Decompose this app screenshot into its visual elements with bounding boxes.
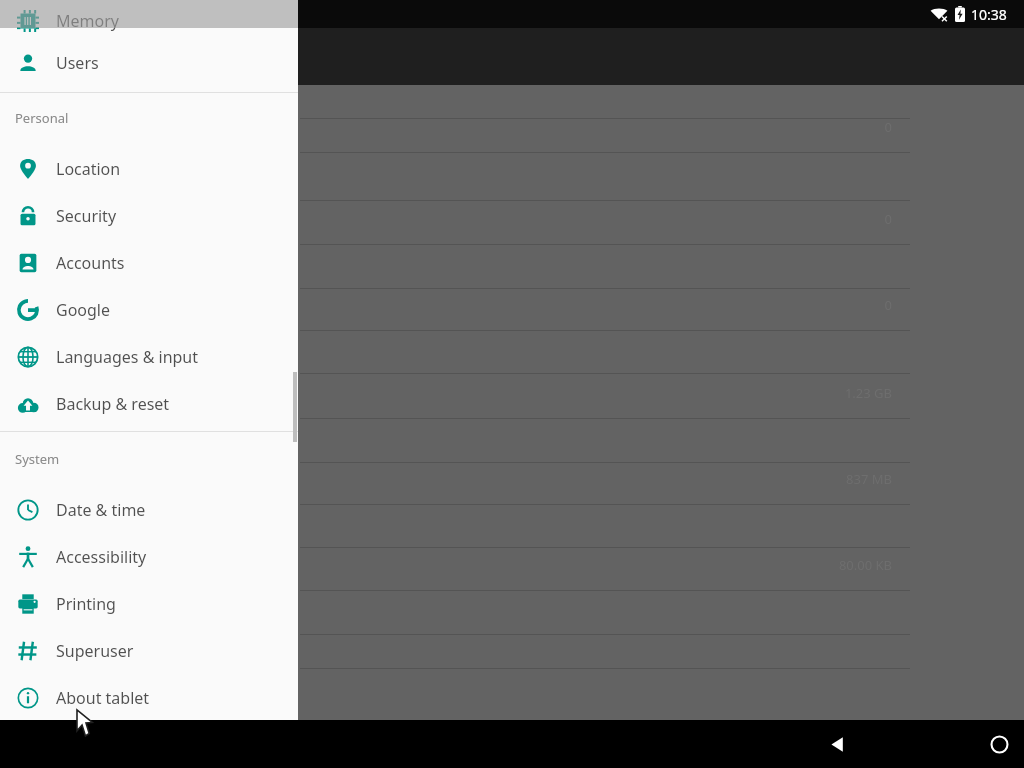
staticText: Accessibility	[56, 546, 147, 568]
button[interactable]: About tablet	[0, 681, 298, 714]
staticText: Accounts	[56, 252, 125, 274]
button[interactable]: Recent apps	[648, 720, 1024, 768]
staticText: Users	[56, 52, 99, 74]
staticText: System	[15, 450, 60, 468]
button[interactable]: Home	[487, 720, 1024, 768]
button[interactable]: Accounts	[0, 246, 298, 279]
button[interactable]: Languages & input	[0, 340, 298, 373]
staticText: About tablet	[56, 687, 150, 709]
button[interactable]: Users	[0, 46, 298, 79]
staticText: Printing	[56, 593, 116, 615]
button[interactable]: Back	[325, 720, 1024, 768]
staticText: Superuser	[56, 640, 134, 662]
button[interactable]: Google	[0, 293, 298, 326]
staticText: Security	[56, 205, 117, 227]
staticText: Languages & input	[56, 346, 199, 368]
button[interactable]: Printing	[0, 587, 298, 620]
staticText: Backup & reset	[56, 393, 170, 415]
staticText: Location	[56, 158, 121, 180]
staticText: Memory	[56, 10, 119, 32]
staticText: Google	[56, 299, 111, 321]
button[interactable]: Accessibility	[0, 540, 298, 573]
staticText: 10:38	[971, 5, 1007, 24]
button[interactable]: Superuser	[0, 634, 298, 667]
button[interactable]: Memory	[0, 4, 298, 37]
button[interactable]: Security	[0, 199, 298, 232]
staticText: 0	[820, 118, 892, 136]
button[interactable]: Location	[0, 152, 298, 185]
staticText: Personal	[15, 109, 69, 127]
staticText: Date & time	[56, 499, 146, 521]
button[interactable]: Date & time	[0, 493, 298, 526]
button[interactable]: Backup & reset	[0, 387, 298, 420]
